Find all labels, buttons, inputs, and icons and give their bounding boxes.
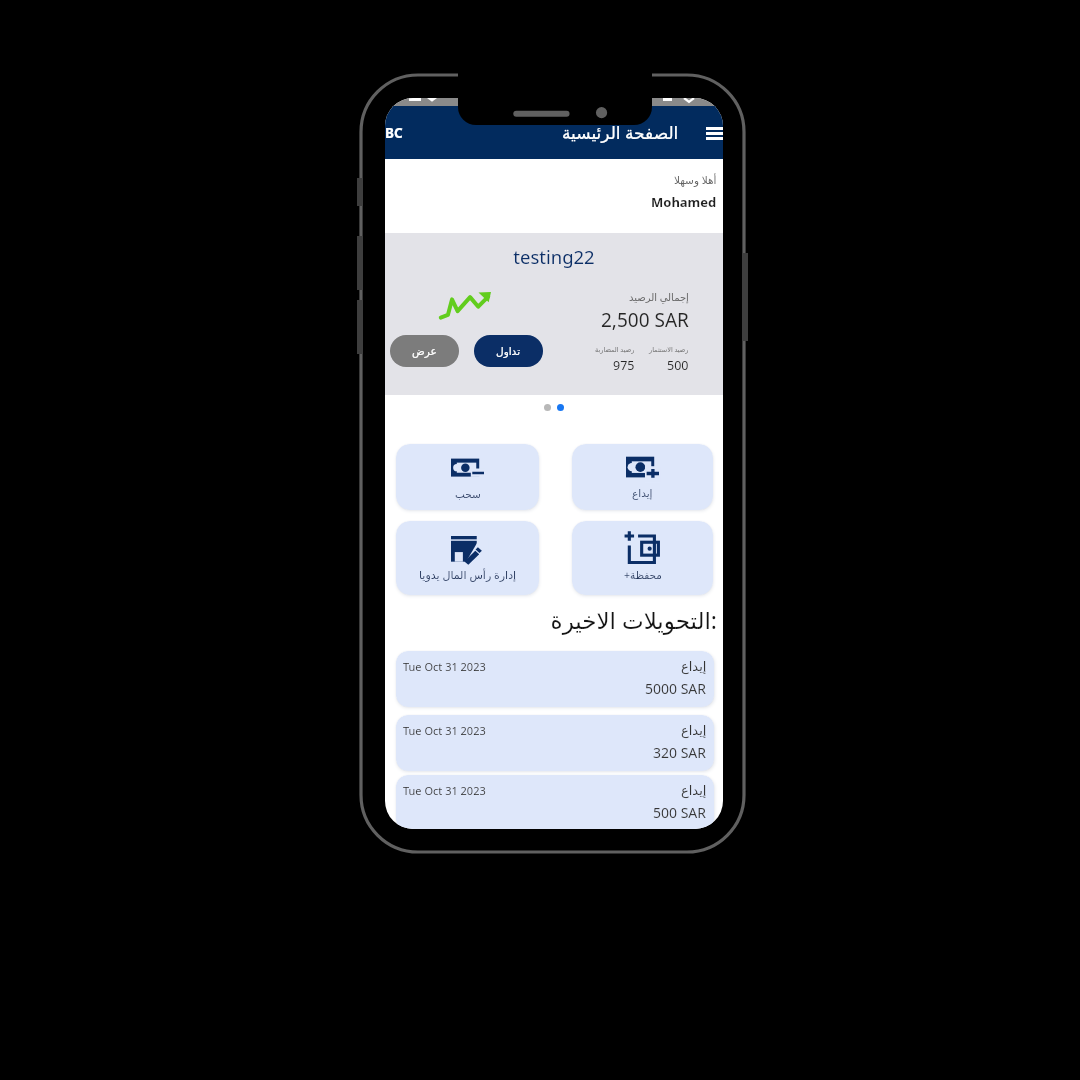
button[interactable]: +محفظة	[572, 521, 713, 595]
staticText: رصيد المضاربة	[595, 345, 635, 354]
staticText: إجمالي الرصيد	[629, 290, 689, 304]
staticText: إيداع	[681, 723, 707, 738]
staticText: 5000 SAR	[645, 679, 707, 698]
staticText: BC	[385, 124, 403, 142]
staticText: إيداع	[632, 487, 653, 499]
staticText: 975	[613, 357, 635, 374]
button[interactable]: عرض	[390, 335, 459, 367]
staticText: عرض	[412, 345, 437, 357]
staticText: أهلا وسهلا	[674, 173, 717, 187]
button[interactable]: Page 2	[557, 404, 564, 411]
staticText: التحويلات الاخيرة:	[385, 604, 717, 635]
staticText: 500 SAR	[653, 803, 707, 822]
staticText: إيداع	[681, 659, 707, 674]
staticText: 320 SAR	[653, 743, 707, 762]
button[interactable]: Page 1	[544, 404, 551, 411]
staticText: 2,500 SAR	[601, 307, 689, 333]
button[interactable]: Menu	[702, 119, 723, 147]
staticText: Tue Oct 31 2023	[403, 783, 486, 798]
staticText: Tue Oct 31 2023	[403, 659, 486, 674]
staticText: Mohamed	[651, 193, 717, 211]
staticText: Tue Oct 31 2023	[403, 723, 486, 738]
button[interactable]: Tue Oct 31 2023	[396, 715, 714, 771]
button[interactable]: BC	[385, 124, 404, 142]
staticText: تداول	[496, 345, 521, 357]
staticText: الصفحة الرئيسية	[562, 121, 679, 144]
staticText: إدارة رأس المال يدويا	[419, 567, 517, 582]
staticText: رصيد الاستثمار	[649, 345, 689, 354]
button[interactable]: إدارة رأس المال يدويا	[396, 521, 539, 595]
staticText: إيداع	[681, 783, 707, 798]
button[interactable]: Tue Oct 31 2023	[396, 651, 714, 707]
staticText: testing22	[385, 244, 723, 269]
staticText: 500	[667, 357, 689, 374]
staticText: سحب	[455, 488, 481, 500]
button[interactable]: Tue Oct 31 2023	[396, 775, 714, 829]
button[interactable]: تداول	[474, 335, 543, 367]
staticText: +محفظة	[624, 568, 662, 582]
button[interactable]: سحب	[396, 444, 539, 510]
button[interactable]: إيداع	[572, 444, 713, 510]
